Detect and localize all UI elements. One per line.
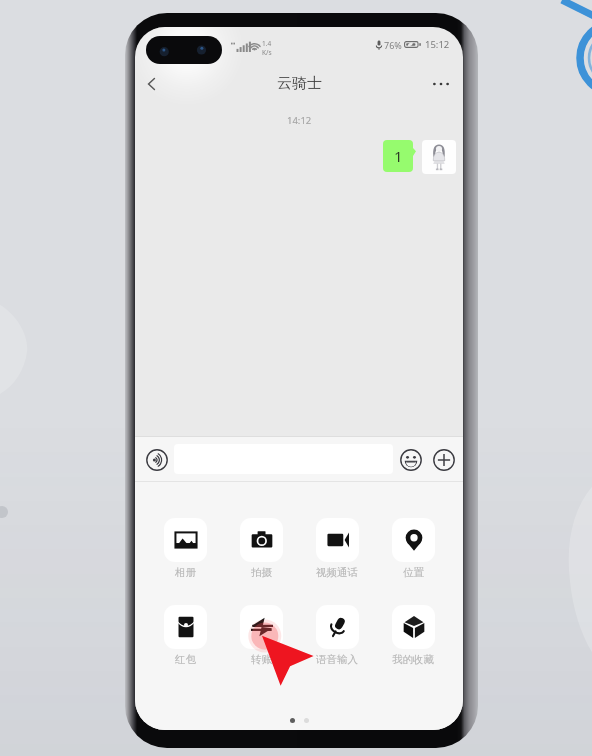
staticText: 云骑士 (277, 74, 322, 93)
staticText: 14:12 (287, 114, 312, 127)
staticText: 相册 (175, 566, 196, 579)
staticText: 红包 (175, 653, 196, 666)
button[interactable]: 语音输入 (307, 605, 367, 666)
button[interactable]: 红包 (155, 605, 215, 666)
staticText: 位置 (403, 566, 424, 579)
button[interactable]: 相册 (155, 518, 215, 579)
button[interactable]: Back (135, 67, 168, 100)
button[interactable]: 位置 (383, 518, 443, 579)
button[interactable]: More options (424, 67, 458, 101)
button[interactable]: 转账 (231, 605, 291, 666)
button[interactable]: Avatar (422, 140, 456, 174)
staticText: 拍摄 (251, 566, 272, 579)
button[interactable]: More (429, 445, 458, 474)
button[interactable]: 视频通话 (307, 518, 367, 579)
staticText: 视频通话 (316, 566, 358, 579)
button[interactable]: 我的收藏 (383, 605, 443, 666)
staticText: 语音输入 (316, 653, 358, 666)
staticText: 76% (384, 39, 402, 51)
staticText: 我的收藏 (392, 653, 434, 666)
staticText: 1 (394, 146, 403, 166)
staticText: 15:12 (425, 38, 450, 51)
staticText: K/s (262, 48, 272, 57)
button[interactable]: 拍摄 (231, 518, 291, 579)
button[interactable]: Emoji (396, 445, 425, 474)
button[interactable]: Voice input (142, 445, 171, 474)
staticText: 转账 (251, 653, 272, 666)
button[interactable]: 1 (383, 140, 413, 172)
staticText: 1.4 (262, 39, 272, 48)
